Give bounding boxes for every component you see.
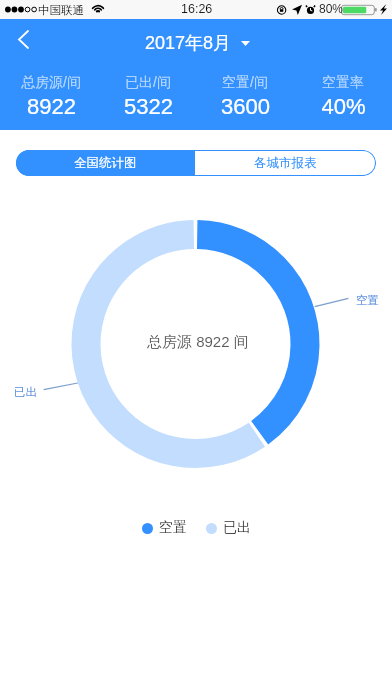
button[interactable]: 全国统计图 bbox=[16, 150, 195, 176]
staticText: 80% bbox=[319, 2, 344, 15]
staticText: 各城市报表 bbox=[254, 155, 317, 171]
staticText: 空置 bbox=[356, 293, 379, 307]
staticText: 已出 bbox=[223, 519, 251, 537]
staticText: 空置/间 bbox=[222, 74, 268, 92]
staticText: 总房源 8922 间 bbox=[147, 333, 249, 352]
staticText: 已出/间 bbox=[125, 74, 171, 92]
staticText: 16:26 bbox=[181, 2, 213, 16]
staticText: 3600 bbox=[221, 94, 270, 119]
staticText: 总房源/间 bbox=[21, 74, 81, 92]
staticText: 5322 bbox=[124, 94, 173, 119]
staticText: 空置 bbox=[159, 519, 187, 537]
staticText: 40% bbox=[321, 94, 366, 119]
staticText: 8922 bbox=[27, 94, 76, 119]
staticText: 空置率 bbox=[322, 74, 364, 92]
staticText: 2017年8月 bbox=[145, 32, 232, 55]
staticText: 中国联通 bbox=[38, 3, 84, 17]
staticText: 已出 bbox=[14, 385, 37, 399]
staticText: 全国统计图 bbox=[74, 155, 137, 171]
button[interactable]: 各城市报表 bbox=[195, 150, 376, 176]
button[interactable]: 2017年8月 bbox=[145, 32, 250, 55]
button[interactable]: Back bbox=[3, 19, 43, 59]
